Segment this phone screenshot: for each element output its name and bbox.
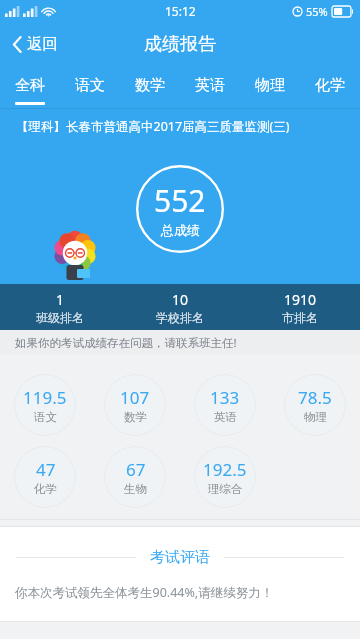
button[interactable]: 数学: [120, 66, 180, 109]
staticText: 物理: [304, 410, 327, 424]
staticText: 返回: [27, 34, 58, 54]
button[interactable]: 物理: [240, 66, 300, 109]
button[interactable]: 133: [194, 374, 256, 436]
staticText: 107: [120, 386, 150, 409]
staticText: 化学: [34, 482, 57, 496]
button[interactable]: 47: [14, 446, 76, 508]
staticText: 考试评语: [150, 548, 210, 567]
button[interactable]: 化学: [300, 66, 360, 109]
staticText: 10: [172, 290, 189, 309]
staticText: 数学: [124, 410, 147, 424]
staticText: 47: [36, 458, 56, 481]
button[interactable]: 全科: [0, 66, 60, 109]
staticText: 全科: [15, 76, 45, 95]
staticText: 【理科】长春市普通高中2017届高三质量监测(三): [16, 118, 290, 135]
button[interactable]: 返回: [0, 26, 70, 62]
button[interactable]: 107: [104, 374, 166, 436]
staticText: 语文: [34, 410, 57, 424]
button[interactable]: 语文: [60, 66, 120, 109]
staticText: 理综合: [208, 482, 243, 496]
button[interactable]: 119.5: [14, 374, 76, 436]
staticText: 552: [154, 180, 206, 221]
staticText: 生物: [124, 482, 147, 496]
staticText: 数学: [135, 76, 165, 95]
staticText: 化学: [315, 76, 345, 95]
button[interactable]: 78.5: [284, 374, 346, 436]
staticText: 总成绩: [161, 222, 200, 238]
staticText: 1910: [284, 290, 317, 309]
staticText: 物理: [255, 76, 285, 95]
staticText: 55%: [306, 4, 328, 19]
staticText: 67: [126, 458, 146, 481]
staticText: 英语: [195, 76, 225, 95]
staticText: 78.5: [298, 386, 332, 409]
staticText: 市排名: [282, 310, 318, 325]
button[interactable]: 1: [0, 284, 120, 330]
staticText: 学校排名: [156, 310, 204, 325]
staticText: 语文: [75, 76, 105, 95]
staticText: 班级排名: [36, 310, 84, 325]
button[interactable]: 1910: [240, 284, 360, 330]
staticText: 如果你的考试成绩存在问题，请联系班主任!: [15, 335, 237, 351]
staticText: 成绩报告: [144, 33, 216, 56]
staticText: 119.5: [23, 386, 67, 409]
button[interactable]: 192.5: [194, 446, 256, 508]
button[interactable]: 67: [104, 446, 166, 508]
staticText: 英语: [214, 410, 237, 424]
staticText: 192.5: [203, 458, 247, 481]
staticText: 1: [56, 290, 65, 309]
staticText: 你本次考试领先全体考生90.44%,请继续努力！: [15, 584, 274, 601]
staticText: 15:12: [165, 3, 196, 19]
button[interactable]: 英语: [180, 66, 240, 109]
button[interactable]: 10: [120, 284, 240, 330]
staticText: 133: [210, 386, 240, 409]
